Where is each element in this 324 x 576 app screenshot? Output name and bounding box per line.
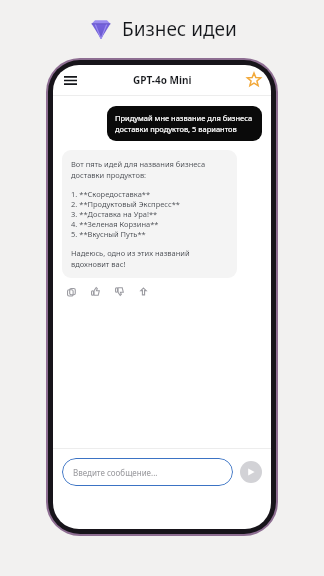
staticText: 4. **Зеленая Корзина** <box>71 219 159 229</box>
staticText: 3. **Доставка на Ура!** <box>71 209 158 219</box>
button[interactable]: Menu <box>59 69 81 91</box>
staticText: 5. **Вкусный Путь** <box>71 229 146 239</box>
button[interactable]: Придумай мне название для бизнеса достав… <box>107 106 262 141</box>
staticText: Бизнес идеи <box>122 16 237 42</box>
button[interactable]: Copy <box>65 285 78 298</box>
button[interactable]: Введите сообщение... <box>62 458 233 486</box>
button[interactable]: Вот пять идей для названия бизнеса доста… <box>62 150 237 278</box>
staticText: 2. **Продуктовый Экспресс** <box>71 199 180 209</box>
staticText: GPT-4o Mini <box>133 73 192 87</box>
staticText: Вот пять идей для названия бизнеса доста… <box>71 159 228 180</box>
staticText: Придумай мне название для бизнеса достав… <box>115 113 254 134</box>
button[interactable]: Send <box>240 461 262 483</box>
staticText: Введите сообщение... <box>73 467 158 478</box>
button[interactable]: Share <box>137 285 150 298</box>
button[interactable]: Dislike <box>113 285 126 298</box>
staticText: Надеюсь, одно из этих названий вдохновит… <box>71 248 228 269</box>
button[interactable]: Like <box>89 285 102 298</box>
button[interactable]: Favorite <box>243 69 265 91</box>
staticText: 1. **Скоредоставка** <box>71 189 151 199</box>
